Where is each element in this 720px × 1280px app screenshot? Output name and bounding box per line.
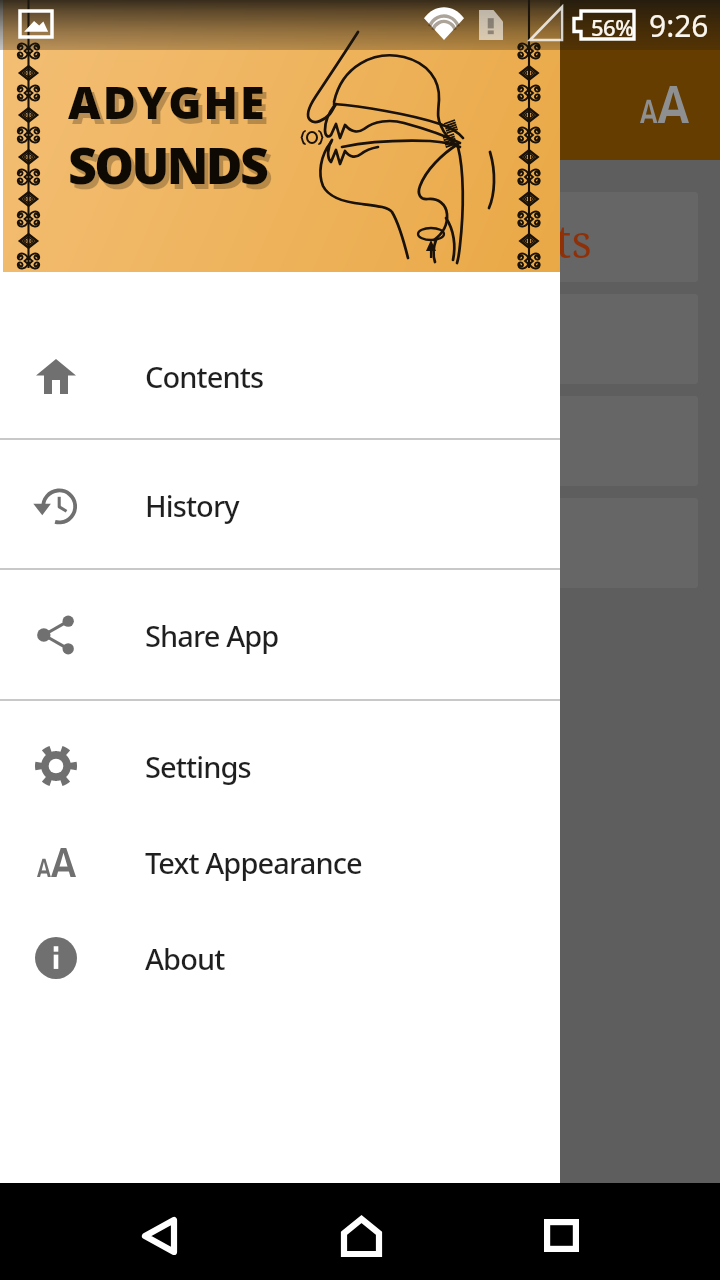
button[interactable] <box>24 498 698 588</box>
button[interactable] <box>24 294 698 384</box>
button[interactable]: Text Appearance <box>0 814 560 910</box>
button[interactable]: About <box>0 910 560 1006</box>
staticText: About <box>145 939 225 978</box>
staticText: 9:26 <box>649 5 709 46</box>
staticText: SOUNDS <box>72 136 271 204</box>
button[interactable] <box>24 192 698 282</box>
staticText: Text Appearance <box>145 843 362 882</box>
button[interactable]: History <box>0 441 560 569</box>
button[interactable]: Settings <box>0 718 560 814</box>
button[interactable]: Share App <box>0 570 560 700</box>
staticText: Share App <box>145 616 279 655</box>
staticText: 56% <box>591 12 634 42</box>
staticText: Contents <box>404 210 592 271</box>
button[interactable]: Recents <box>501 1183 621 1280</box>
staticText: Settings <box>145 747 251 786</box>
staticText: ADYGHE <box>68 71 267 132</box>
staticText: SOUNDS <box>68 131 267 199</box>
button[interactable]: Home <box>301 1183 421 1280</box>
button[interactable] <box>24 396 698 486</box>
button[interactable]: Text appearance <box>616 68 712 140</box>
staticText: ADYGHE <box>72 76 271 137</box>
staticText: History <box>145 486 239 525</box>
button[interactable]: Back <box>99 1183 219 1280</box>
button[interactable]: Contents <box>0 312 560 440</box>
staticText: Contents <box>145 357 264 396</box>
